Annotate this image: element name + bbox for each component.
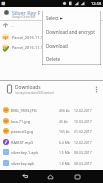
- button[interactable]: Recent apps: [69, 170, 86, 183]
- staticText: RAKIST.mp3: [11, 140, 33, 145]
- staticText: 165 kb: [59, 129, 70, 134]
- staticText: Download: [46, 43, 68, 49]
- button[interactable]: Up one level: [0, 21, 103, 31]
- staticText: koa-71.jpg: [11, 119, 31, 124]
- staticText: peanut3.jpg: [11, 129, 34, 134]
- staticText: silverkey.apk: [11, 161, 35, 166]
- staticText: Downloads: [15, 84, 41, 91]
- staticText: Silver Key F: [12, 9, 41, 16]
- staticText: 6.4 Mb: [59, 140, 70, 145]
- button[interactable]: Home: [42, 170, 59, 183]
- staticText: Google Drive/Silv: [12, 15, 36, 19]
- staticText: 1.5 Mb: [59, 150, 70, 155]
- staticText: 08-03-2017: [74, 161, 92, 166]
- staticText: 12-02-2017: [74, 108, 92, 113]
- staticText: 456 kb: [59, 108, 70, 113]
- staticText: 10-03-2017: [74, 119, 92, 124]
- button[interactable]: Back: [16, 170, 33, 183]
- staticText: /storage/emulated/0/Download: [15, 91, 54, 95]
- button[interactable]: koa-71.jpg: [0, 116, 103, 126]
- staticText: 01-02-2017: [74, 129, 92, 134]
- staticText: Download and encrypt: [46, 29, 95, 35]
- staticText: Select: [46, 15, 59, 21]
- staticText: 12-02-2017: [74, 140, 92, 145]
- staticText: silverkey-1.apk: [11, 150, 38, 155]
- button[interactable]: Silver Key F: [0, 7, 103, 20]
- button[interactable]: RAKIST.mp3: [0, 137, 103, 147]
- button[interactable]: silverkey.apk: [0, 158, 103, 168]
- staticText: Parcel_2016-11-1: [12, 35, 43, 40]
- button[interactable]: Downloads: [0, 81, 103, 101]
- staticText: Delete: [46, 56, 60, 62]
- other: Up one level: [3, 23, 8, 28]
- button[interactable]: Parcel_2016-11-1: [0, 32, 103, 42]
- button[interactable]: silverkey-1.apk: [0, 147, 103, 157]
- button[interactable]: IMG_9593.JPG: [0, 105, 103, 115]
- button[interactable]: More options: [92, 83, 101, 96]
- button[interactable]: Download: [42, 39, 101, 53]
- staticText: 08-03-2017: [74, 150, 92, 155]
- staticText: ...: [11, 23, 15, 28]
- staticText: 45 kb: [59, 119, 68, 124]
- staticText: 1.8 Mb: [59, 161, 70, 166]
- button[interactable]: Select: [42, 11, 101, 25]
- button[interactable]: peanut3.jpg: [0, 126, 103, 136]
- button[interactable]: Delete: [42, 53, 101, 65]
- staticText: Parcel_2016-11-1: [12, 45, 43, 50]
- button[interactable]: Parcel_2016-11-1: [0, 42, 103, 52]
- staticText: IMG_9593.JPG: [11, 108, 37, 113]
- button[interactable]: Download and encrypt: [42, 25, 101, 39]
- staticText: 12:58: [91, 1, 102, 6]
